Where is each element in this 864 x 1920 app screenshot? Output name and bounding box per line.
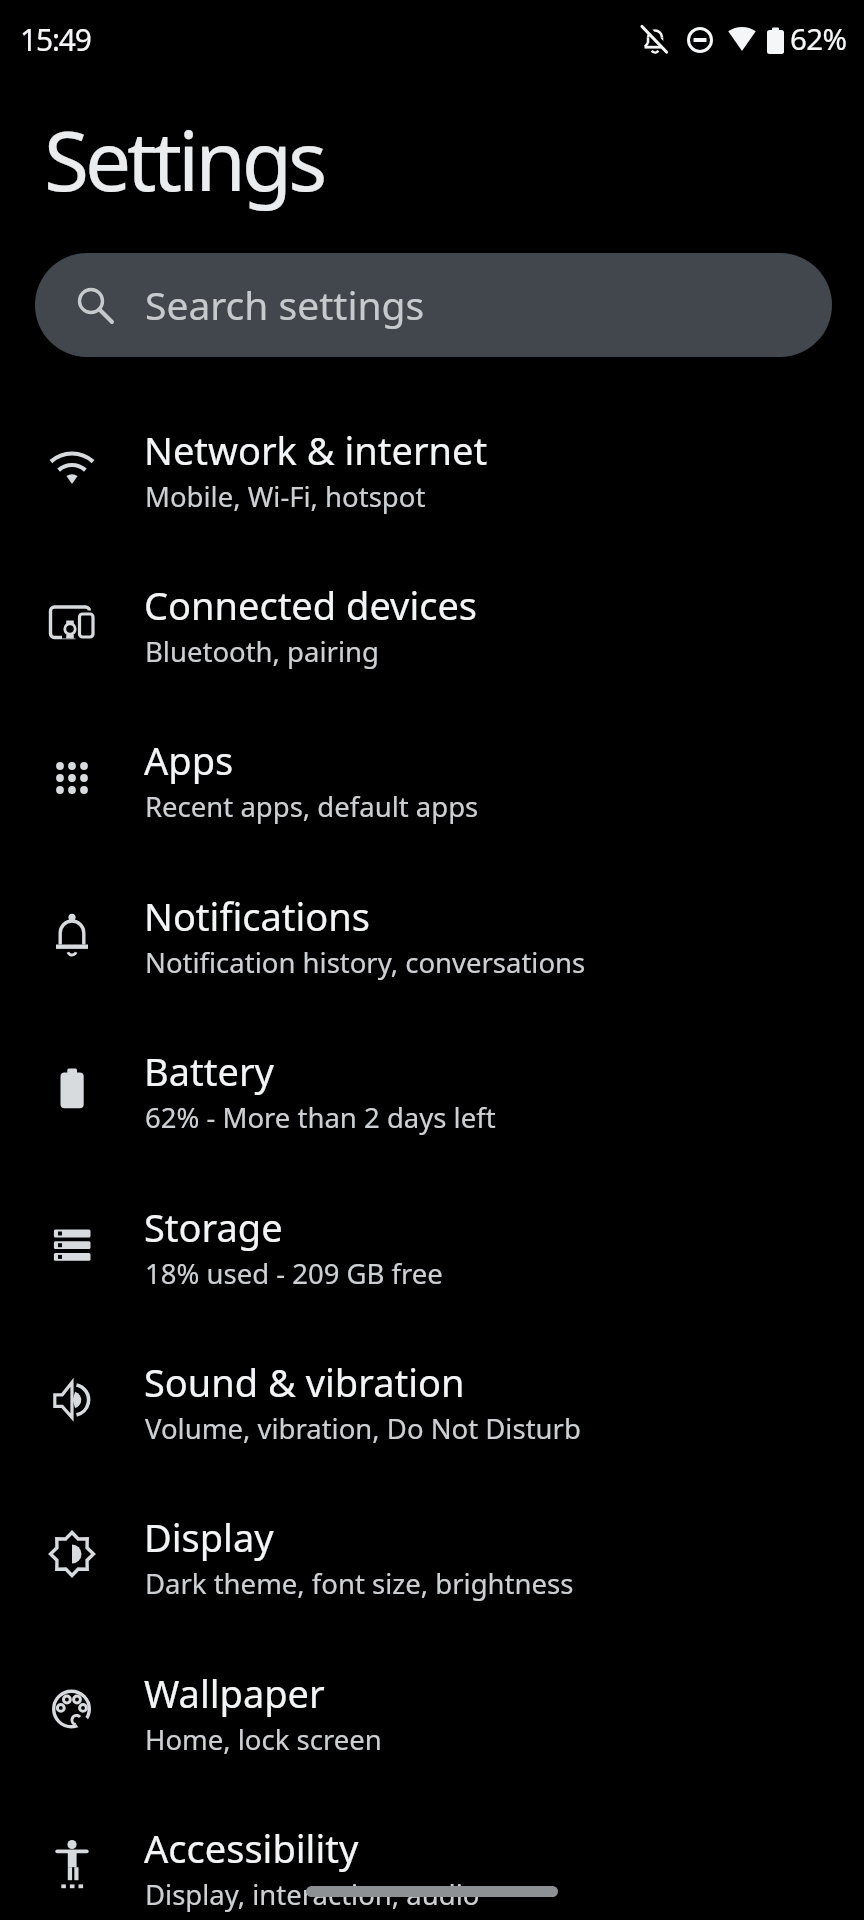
button[interactable]: Sound & vibration [0, 1328, 864, 1483]
staticText: Notifications [144, 890, 371, 942]
staticText: Bluetooth, pairing [145, 633, 379, 670]
staticText: 18% used - 209 GB free [145, 1255, 443, 1292]
button[interactable]: Network & internet [0, 396, 864, 551]
button[interactable]: Notifications [0, 862, 864, 1017]
button[interactable]: Battery [0, 1017, 864, 1172]
staticText: Settings [44, 103, 324, 215]
staticText: Home, lock screen [145, 1721, 382, 1758]
staticText: Search settings [145, 278, 425, 331]
staticText: Accessibility [144, 1822, 359, 1874]
staticText: Volume, vibration, Do Not Disturb [145, 1410, 581, 1447]
staticText: Wallpaper [144, 1667, 325, 1719]
staticText: Display, interaction, audio [145, 1876, 480, 1913]
staticText: Mobile, Wi-Fi, hotspot [145, 478, 426, 515]
staticText: 15:49 [20, 19, 91, 60]
staticText: Display [144, 1511, 274, 1563]
staticText: Network & internet [144, 424, 488, 476]
staticText: 62% [790, 18, 847, 58]
staticText: Dark theme, font size, brightness [145, 1565, 574, 1602]
staticText: Apps [144, 734, 234, 786]
staticText: 62% - More than 2 days left [145, 1099, 496, 1136]
staticText: Recent apps, default apps [145, 788, 479, 825]
button[interactable]: Search settings [35, 253, 832, 357]
staticText: Notification history, conversations [145, 944, 586, 981]
button[interactable]: Wallpaper [0, 1639, 864, 1794]
staticText: Storage [144, 1201, 283, 1253]
button[interactable]: Connected devices [0, 551, 864, 706]
button[interactable]: Display [0, 1483, 864, 1638]
staticText: Battery [144, 1045, 274, 1097]
button[interactable]: Apps [0, 706, 864, 861]
staticText: Connected devices [144, 579, 478, 631]
button[interactable]: Storage [0, 1173, 864, 1328]
button[interactable]: Accessibility [0, 1794, 864, 1920]
staticText: Sound & vibration [144, 1356, 465, 1408]
